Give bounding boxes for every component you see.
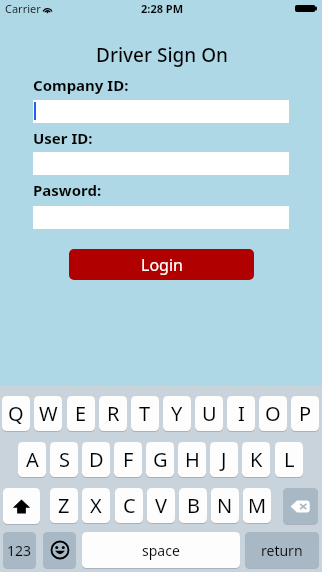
staticText: K — [250, 446, 263, 473]
button[interactable]: Shift — [3, 488, 40, 524]
button[interactable]: K — [242, 442, 270, 477]
staticText: Carrier — [5, 1, 41, 16]
button[interactable]: I — [227, 396, 255, 431]
staticText: Pasword: — [33, 180, 102, 200]
button[interactable]: H — [178, 442, 206, 477]
button[interactable]: Login — [69, 249, 254, 280]
staticText: A — [26, 446, 39, 473]
button[interactable]: B — [179, 488, 207, 523]
staticText: M — [248, 492, 267, 519]
staticText: R — [107, 400, 120, 427]
button[interactable]: space — [82, 532, 240, 568]
staticText: E — [75, 400, 87, 427]
staticText: return — [261, 541, 303, 560]
button[interactable]: Z — [50, 488, 78, 523]
button[interactable]: C — [115, 488, 143, 523]
button[interactable] — [33, 100, 289, 123]
button[interactable]: N — [211, 488, 239, 523]
staticText: V — [155, 492, 167, 519]
button[interactable]: V — [147, 488, 175, 523]
button[interactable]: M — [243, 488, 271, 523]
staticText: Login — [141, 254, 183, 276]
button[interactable]: Backspace — [283, 488, 318, 524]
staticText: H — [185, 446, 200, 473]
button[interactable]: U — [195, 396, 223, 431]
button[interactable]: S — [50, 442, 78, 477]
button[interactable]: D — [82, 442, 110, 477]
staticText: Q — [8, 400, 24, 427]
button[interactable]: Y — [163, 396, 191, 431]
button[interactable]: E — [67, 396, 95, 431]
button[interactable]: P — [291, 396, 319, 431]
button[interactable]: R — [99, 396, 127, 431]
staticText: X — [90, 492, 102, 519]
button[interactable]: F — [114, 442, 142, 477]
staticText: space — [142, 541, 180, 560]
staticText: J — [221, 446, 227, 473]
staticText: C — [123, 492, 136, 519]
button[interactable]: T — [131, 396, 159, 431]
staticText: O — [265, 400, 281, 427]
staticText: Z — [58, 492, 70, 519]
button[interactable]: W — [34, 396, 62, 431]
staticText: W — [39, 400, 58, 427]
staticText: S — [59, 446, 70, 473]
button[interactable]: return — [245, 532, 319, 568]
staticText: N — [217, 492, 233, 519]
button[interactable]: X — [82, 488, 110, 523]
button[interactable]: L — [275, 442, 303, 477]
button[interactable]: A — [18, 442, 46, 477]
staticText: I — [238, 400, 245, 427]
staticText: Driver Sign On — [96, 42, 228, 68]
staticText: 123 — [7, 541, 32, 560]
staticText: D — [89, 446, 104, 473]
button[interactable]: Emoji — [43, 532, 76, 568]
staticText: User ID: — [33, 128, 93, 148]
button[interactable]: J — [210, 442, 238, 477]
staticText: Company ID: — [33, 75, 129, 95]
staticText: U — [202, 400, 217, 427]
button[interactable]: G — [146, 442, 174, 477]
staticText: Y — [171, 400, 183, 427]
staticText: T — [139, 400, 151, 427]
staticText: P — [299, 400, 312, 427]
staticText: L — [284, 446, 295, 473]
button[interactable]: Q — [2, 396, 30, 431]
button[interactable]: O — [259, 396, 287, 431]
staticText: B — [187, 492, 200, 519]
staticText: F — [123, 446, 134, 473]
staticText: 2:28 PM — [141, 1, 184, 16]
staticText: G — [153, 446, 168, 473]
button[interactable]: 123 — [3, 532, 36, 568]
